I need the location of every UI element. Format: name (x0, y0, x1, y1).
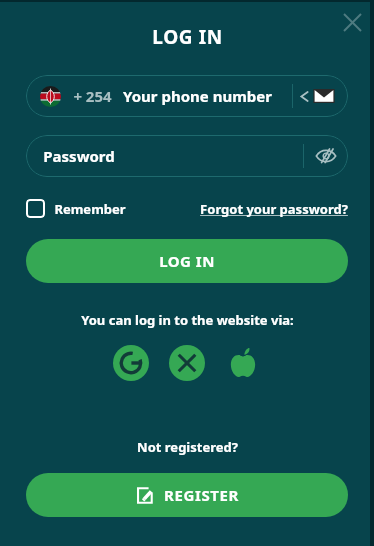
button[interactable]: Forgot your password? (200, 200, 348, 218)
staticText: Remember (54, 200, 126, 218)
button[interactable]: Password (26, 135, 348, 177)
staticText: LOG IN (159, 251, 215, 271)
button[interactable]: Show password (304, 135, 348, 177)
button[interactable]: Sign in with X (169, 345, 205, 381)
button[interactable]: Use email instead (293, 75, 348, 117)
staticText: Password (43, 146, 115, 166)
button[interactable]: Remember (26, 199, 126, 218)
button[interactable]: LOG IN (26, 239, 348, 283)
staticText: LOG IN (152, 24, 223, 50)
button[interactable]: + 254 (26, 75, 348, 117)
button[interactable]: REGISTER (26, 473, 348, 517)
button[interactable]: Sign in with Google (113, 345, 149, 381)
staticText: Forgot your password? (200, 200, 348, 218)
button[interactable]: Close (338, 8, 366, 36)
staticText: + 254 (73, 86, 112, 106)
staticText: REGISTER (164, 485, 239, 505)
staticText: You can log in to the website via: (81, 311, 294, 329)
staticText: Not registered? (137, 438, 238, 456)
staticText: Your phone number (123, 86, 272, 106)
button[interactable]: Sign in with Apple (225, 345, 261, 381)
